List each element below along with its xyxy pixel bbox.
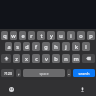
staticText: h bbox=[54, 43, 58, 51]
button[interactable]: w bbox=[10, 31, 17, 40]
staticText: b bbox=[54, 55, 58, 63]
button[interactable]: Backspace bbox=[82, 54, 95, 63]
button[interactable]: Voice input bbox=[78, 85, 87, 94]
staticText: t bbox=[40, 32, 43, 40]
button[interactable]: h bbox=[52, 42, 60, 51]
staticText: j bbox=[65, 43, 67, 51]
button[interactable]: n bbox=[62, 54, 70, 63]
staticText: i bbox=[70, 32, 72, 40]
button[interactable]: f bbox=[32, 42, 40, 51]
staticText: e bbox=[21, 32, 25, 40]
button[interactable]: b bbox=[52, 54, 60, 63]
staticText: m bbox=[73, 55, 79, 63]
staticText: c bbox=[35, 55, 38, 63]
button[interactable]: i bbox=[67, 31, 75, 40]
staticText: r bbox=[30, 32, 33, 40]
staticText: q bbox=[3, 32, 7, 40]
staticText: , bbox=[18, 70, 20, 77]
button[interactable]: . bbox=[67, 69, 71, 77]
button[interactable]: Emoji bbox=[7, 85, 16, 94]
button[interactable]: z bbox=[13, 54, 20, 63]
button[interactable]: q bbox=[1, 31, 8, 40]
button[interactable]: t bbox=[37, 31, 45, 40]
button[interactable]: Space bbox=[23, 69, 65, 77]
staticText: l bbox=[85, 43, 87, 51]
button[interactable]: u bbox=[57, 31, 65, 40]
staticText: y bbox=[50, 32, 53, 40]
button[interactable]: ?123 bbox=[1, 69, 14, 77]
button[interactable]: a bbox=[5, 42, 12, 51]
button[interactable]: Shift bbox=[1, 54, 11, 63]
button[interactable]: r bbox=[28, 31, 35, 40]
staticText: a bbox=[7, 43, 11, 51]
staticText: d bbox=[25, 43, 29, 51]
button[interactable]: g bbox=[42, 42, 50, 51]
staticText: z bbox=[15, 55, 18, 63]
button[interactable]: y bbox=[47, 31, 55, 40]
staticText: o bbox=[79, 32, 83, 40]
staticText: search bbox=[78, 71, 90, 76]
button[interactable]: s bbox=[14, 42, 21, 51]
staticText: w bbox=[11, 32, 16, 40]
button[interactable]: o bbox=[77, 31, 85, 40]
staticText: n bbox=[64, 55, 68, 63]
staticText: . bbox=[68, 70, 70, 77]
button[interactable]: k bbox=[72, 42, 80, 51]
staticText: k bbox=[75, 43, 78, 51]
staticText: g bbox=[44, 43, 48, 51]
staticText: s bbox=[16, 43, 19, 51]
staticText: u bbox=[59, 32, 63, 40]
button[interactable]: search bbox=[73, 69, 95, 77]
button[interactable]: d bbox=[23, 42, 30, 51]
button[interactable]: m bbox=[72, 54, 80, 63]
staticText: f bbox=[35, 43, 37, 51]
staticText: v bbox=[45, 55, 48, 63]
button[interactable]: e bbox=[19, 31, 26, 40]
button[interactable]: p bbox=[87, 31, 95, 40]
button[interactable]: x bbox=[22, 54, 30, 63]
staticText: space bbox=[39, 71, 49, 76]
staticText: p bbox=[89, 32, 93, 40]
staticText: ?123 bbox=[4, 71, 12, 76]
staticText: x bbox=[25, 55, 28, 63]
button[interactable]: v bbox=[42, 54, 50, 63]
button[interactable]: l bbox=[82, 42, 90, 51]
button[interactable]: c bbox=[32, 54, 40, 63]
button[interactable]: , bbox=[16, 69, 21, 77]
button[interactable]: j bbox=[62, 42, 70, 51]
